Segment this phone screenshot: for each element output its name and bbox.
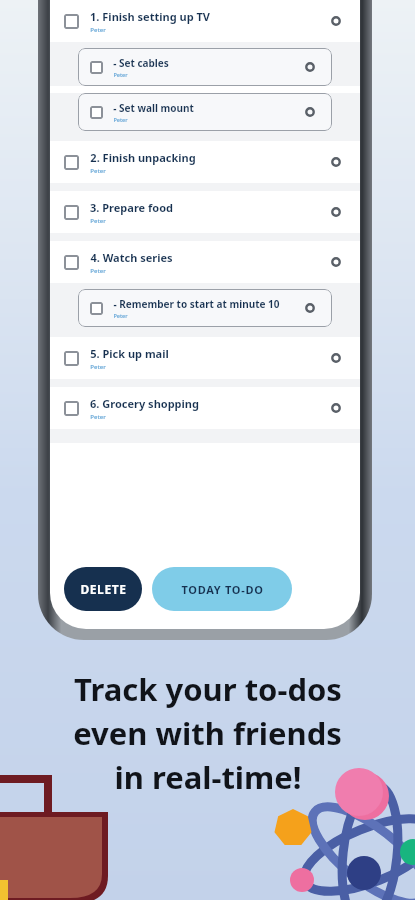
button[interactable]: Toggle task complete [50, 0, 360, 42]
button[interactable]: Toggle task complete [64, 401, 79, 416]
button[interactable]: Toggle task complete [78, 48, 332, 86]
button[interactable]: Toggle task complete [78, 289, 332, 327]
staticText: TODAY TO-DO [181, 582, 264, 597]
staticText: Peter [90, 363, 106, 371]
staticText: 2. Finish unpacking [90, 150, 196, 165]
button[interactable]: Toggle task complete [90, 106, 103, 119]
button[interactable]: Toggle task complete [64, 14, 79, 29]
button[interactable]: TODAY TO-DO [152, 567, 292, 611]
staticText: Peter [90, 267, 106, 275]
button[interactable]: Toggle task complete [90, 302, 103, 315]
button[interactable]: Toggle task complete [90, 61, 103, 74]
button[interactable]: Toggle task complete [50, 387, 360, 429]
staticText: DELETE [80, 581, 127, 597]
staticText: 5. Pick up mail [90, 346, 169, 361]
button[interactable]: DELETE [64, 567, 142, 611]
staticText: Peter [113, 312, 128, 319]
button[interactable]: Task options [326, 202, 346, 222]
staticText: - Set cables [113, 56, 169, 70]
button[interactable]: Task options [300, 102, 320, 122]
button[interactable]: Task options [326, 152, 346, 172]
button[interactable]: Toggle task complete [50, 141, 360, 183]
staticText: Peter [113, 116, 128, 123]
button[interactable]: Toggle task complete [64, 351, 79, 366]
staticText: - Set wall mount [113, 101, 194, 115]
staticText: Peter [113, 71, 128, 78]
button[interactable]: Task options [326, 398, 346, 418]
staticText: Peter [90, 26, 106, 34]
staticText: 3. Prepare food [90, 200, 173, 215]
button[interactable]: Toggle task complete [64, 205, 79, 220]
staticText: in real-time! [114, 756, 302, 798]
staticText: 4. Watch series [90, 250, 173, 265]
staticText: - Remember to start at minute 10 [113, 297, 280, 311]
button[interactable]: Toggle task complete [50, 241, 360, 283]
button[interactable]: Task options [326, 11, 346, 31]
button[interactable]: Toggle task complete [50, 337, 360, 379]
staticText: 6. Grocery shopping [90, 396, 199, 411]
button[interactable]: Task options [300, 298, 320, 318]
staticText: even with friends [73, 712, 342, 754]
staticText: Track your to-dos [74, 668, 342, 710]
staticText: Peter [90, 413, 106, 421]
button[interactable]: Toggle task complete [64, 255, 79, 270]
button[interactable]: Toggle task complete [64, 155, 79, 170]
button[interactable]: Toggle task complete [78, 93, 332, 131]
button[interactable]: Task options [326, 348, 346, 368]
button[interactable]: Task options [300, 57, 320, 77]
staticText: 1. Finish setting up TV [90, 9, 210, 24]
button[interactable]: Task options [326, 252, 346, 272]
button[interactable]: Toggle task complete [50, 191, 360, 233]
staticText: Peter [90, 167, 106, 175]
staticText: Peter [90, 217, 106, 225]
